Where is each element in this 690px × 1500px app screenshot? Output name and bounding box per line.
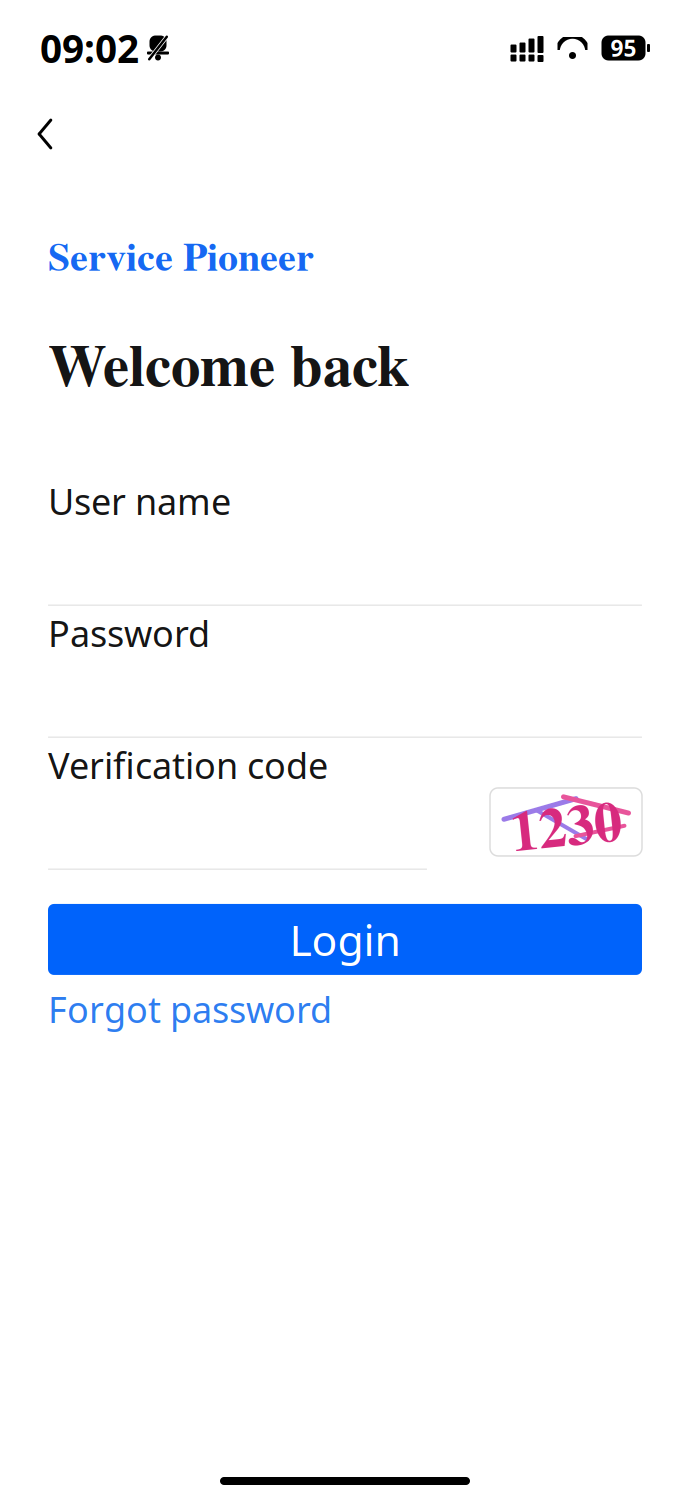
staticText: 1230: [510, 783, 622, 865]
staticText: Forgot password: [48, 984, 332, 1033]
staticText: User name: [48, 476, 231, 525]
button[interactable]: Login: [48, 904, 642, 975]
button[interactable]: Back: [16, 105, 74, 163]
staticText: 09:02: [40, 22, 139, 74]
staticText: Service Pioneer: [48, 226, 314, 284]
staticText: Verification code: [48, 740, 328, 789]
staticText: Login: [289, 910, 400, 968]
staticText: Welcome back: [48, 320, 410, 406]
staticText: Password: [48, 608, 210, 657]
staticText: 95: [610, 33, 636, 63]
button[interactable]: Forgot password: [48, 989, 332, 1029]
